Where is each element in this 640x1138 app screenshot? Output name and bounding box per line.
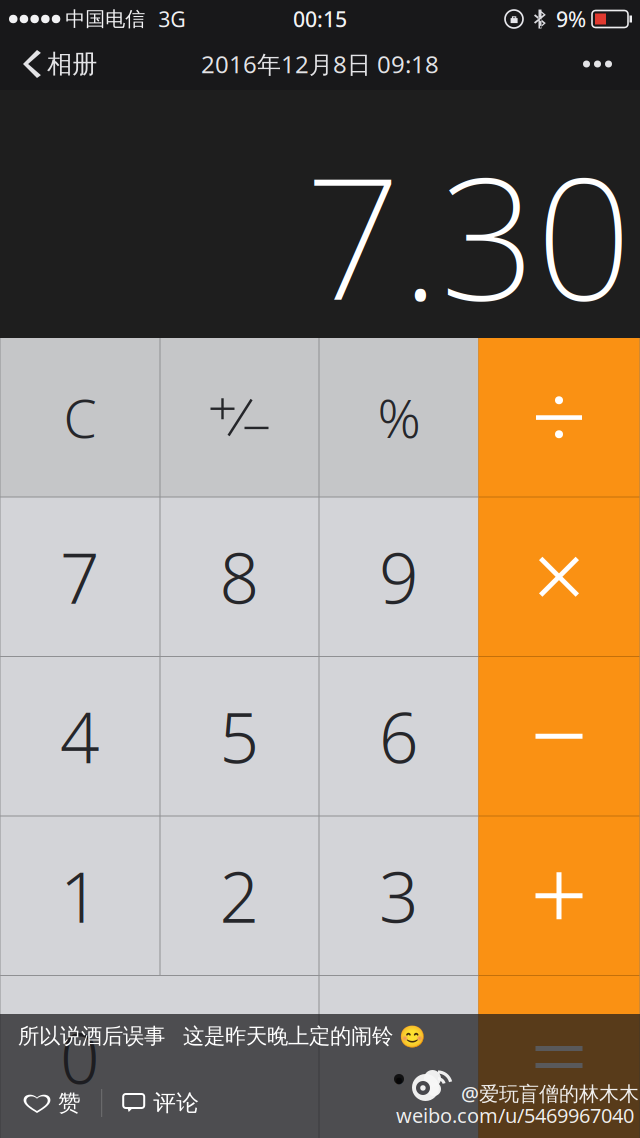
- staticText: .: [390, 1011, 407, 1103]
- button[interactable]: %: [319, 338, 478, 496]
- button[interactable]: C: [0, 338, 159, 496]
- staticText: %: [377, 382, 420, 453]
- staticText: 5: [219, 690, 259, 782]
- button[interactable]: 8: [160, 497, 318, 656]
- staticText: 7: [60, 531, 100, 623]
- staticText: 所以说酒后误事 这是昨天晚上定的闹铃 😊: [18, 1023, 426, 1049]
- staticText: 9: [379, 531, 419, 623]
- button[interactable]: 1: [0, 816, 159, 975]
- button[interactable]: 2: [160, 816, 318, 975]
- button[interactable]: [478, 657, 639, 815]
- button[interactable]: [478, 338, 639, 496]
- staticText: C: [63, 382, 96, 453]
- button[interactable]: [478, 497, 639, 656]
- staticText: 评论: [153, 1089, 199, 1117]
- button[interactable]: 3: [319, 816, 478, 975]
- button[interactable]: 5: [160, 657, 318, 815]
- staticText: 相册: [47, 48, 97, 79]
- staticText: 8: [219, 531, 259, 623]
- button[interactable]: 评论: [102, 1080, 221, 1126]
- staticText: @爱玩盲僧的林木木: [461, 1080, 639, 1107]
- button[interactable]: [160, 338, 318, 496]
- button[interactable]: 相册: [0, 38, 115, 90]
- button[interactable]: .: [319, 976, 478, 1138]
- staticText: 00:15: [293, 5, 347, 33]
- staticText: 2: [219, 850, 259, 942]
- button[interactable]: More: [583, 38, 640, 90]
- staticText: 3: [379, 850, 419, 942]
- staticText: 7.30: [305, 123, 632, 346]
- staticText: 1: [60, 850, 100, 942]
- button[interactable]: [478, 976, 639, 1138]
- staticText: weibo.com/u/5469967040: [396, 1102, 634, 1129]
- button[interactable]: [478, 816, 639, 975]
- staticText: 3G: [158, 5, 186, 33]
- button[interactable]: 赞: [0, 1080, 101, 1126]
- staticText: 9%: [556, 5, 586, 33]
- button[interactable]: [0, 976, 318, 1138]
- staticText: 0: [60, 1011, 100, 1103]
- staticText: 4: [60, 690, 100, 782]
- button[interactable]: 6: [319, 657, 478, 815]
- button[interactable]: 9: [319, 497, 478, 656]
- button[interactable]: 7: [0, 497, 159, 656]
- staticText: 2016年12月8日 09:18: [201, 48, 439, 80]
- staticText: 赞: [58, 1089, 81, 1117]
- staticText: 6: [379, 690, 419, 782]
- button[interactable]: 4: [0, 657, 159, 815]
- staticText: 中国电信: [65, 7, 145, 31]
